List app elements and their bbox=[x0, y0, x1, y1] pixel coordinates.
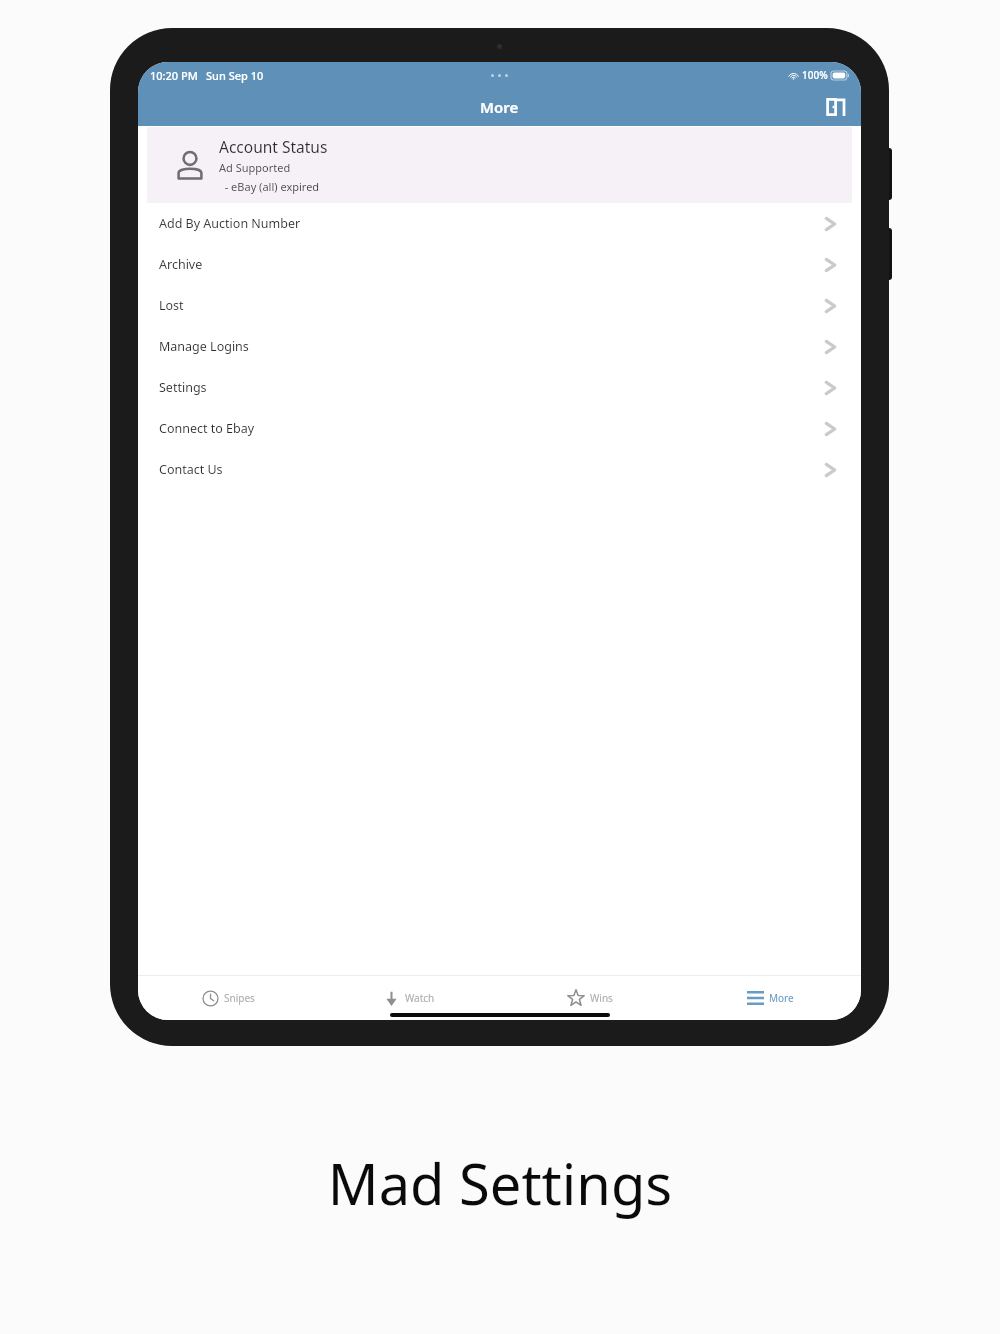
staticText: Lost bbox=[159, 297, 184, 314]
staticText: Ad Supported bbox=[219, 160, 291, 175]
button[interactable]: Contact Us bbox=[138, 449, 861, 490]
staticText: More bbox=[480, 97, 519, 117]
staticText: Snipes bbox=[224, 991, 255, 1005]
button[interactable]: Connect to Ebay bbox=[138, 408, 861, 449]
button[interactable]: Log out bbox=[819, 90, 853, 124]
staticText: Watch bbox=[405, 991, 435, 1005]
button[interactable]: Watch bbox=[318, 976, 499, 1020]
staticText: Connect to Ebay bbox=[159, 420, 255, 437]
button[interactable]: Manage Logins bbox=[138, 326, 861, 367]
button[interactable]: Account Status bbox=[147, 127, 852, 203]
button[interactable]: Lost bbox=[138, 285, 861, 326]
staticText: - eBay (all) expired bbox=[219, 179, 320, 194]
button[interactable]: Add By Auction Number bbox=[138, 203, 861, 244]
staticText: Account Status bbox=[219, 136, 328, 157]
button[interactable]: More bbox=[680, 976, 861, 1020]
staticText: Mad Settings bbox=[0, 1145, 1000, 1221]
button[interactable]: Snipes bbox=[138, 976, 318, 1020]
staticText: Sun Sep 10 bbox=[206, 68, 264, 83]
staticText: 100% bbox=[802, 68, 828, 82]
staticText: 10:20 PM bbox=[150, 68, 198, 83]
button[interactable]: Settings bbox=[138, 367, 861, 408]
staticText: More bbox=[769, 991, 794, 1005]
button[interactable]: Archive bbox=[138, 244, 861, 285]
staticText: Archive bbox=[159, 256, 203, 273]
button[interactable]: Wins bbox=[499, 976, 680, 1020]
staticText: Settings bbox=[159, 379, 207, 396]
staticText: Add By Auction Number bbox=[159, 215, 301, 232]
staticText: Wins bbox=[590, 991, 613, 1005]
staticText: Contact Us bbox=[159, 461, 223, 478]
staticText: Manage Logins bbox=[159, 338, 249, 355]
